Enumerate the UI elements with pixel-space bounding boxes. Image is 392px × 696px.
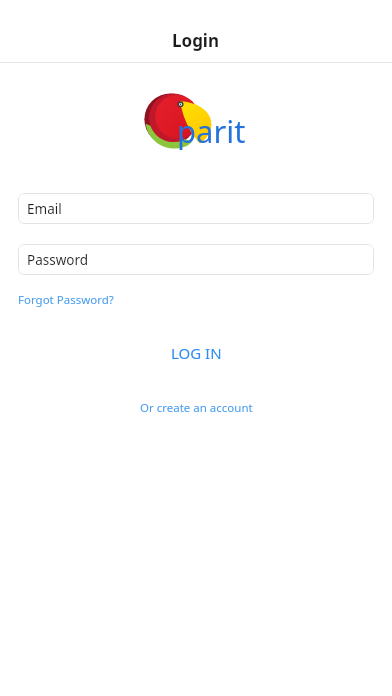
button[interactable]: Email bbox=[18, 193, 374, 224]
staticText: parity bbox=[177, 110, 254, 158]
staticText: Forgot Password? bbox=[18, 292, 114, 308]
staticText: Email bbox=[27, 200, 62, 218]
staticText: Login bbox=[172, 29, 220, 52]
button[interactable]: LOG IN bbox=[157, 338, 236, 368]
button[interactable]: Forgot Password? bbox=[17, 290, 115, 310]
button[interactable]: Or create an account bbox=[134, 397, 259, 419]
staticText: LOG IN bbox=[171, 343, 222, 363]
staticText: Password bbox=[27, 251, 89, 269]
staticText: Or create an account bbox=[140, 400, 253, 416]
other: Parity logo bbox=[0, 90, 392, 158]
button[interactable]: Password bbox=[18, 244, 374, 275]
